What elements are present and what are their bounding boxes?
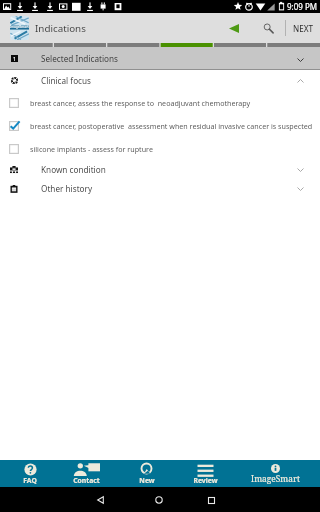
button[interactable]: New	[113, 460, 180, 487]
staticText: New	[139, 476, 155, 485]
button[interactable]: breast cancer, assess the response to ne…	[0, 91, 320, 114]
button[interactable]: Back	[92, 492, 108, 508]
button[interactable]: NEXT	[286, 13, 320, 43]
button[interactable]: Other history	[0, 179, 320, 198]
staticText: silicone implants - assess for rupture	[30, 144, 153, 154]
staticText: ImageSmart	[10, 25, 29, 29]
staticText: FAQ	[23, 476, 37, 485]
staticText: NEXT	[293, 23, 314, 34]
staticText: 1	[13, 55, 17, 62]
button[interactable]: breast cancer, postoperative assessment …	[0, 114, 320, 137]
button[interactable]: Search	[253, 13, 283, 43]
staticText: Known condition	[41, 164, 106, 175]
staticText: breast cancer, postoperative assessment …	[30, 121, 313, 131]
staticText: Selected Indications	[41, 53, 119, 64]
button[interactable]: Known condition	[0, 160, 320, 179]
button[interactable]: Review	[180, 460, 230, 487]
button[interactable]: ImageSmart	[230, 460, 320, 487]
button[interactable]: Clinical focus	[0, 70, 320, 91]
staticText: 9:09 PM	[287, 1, 318, 12]
staticText: breast cancer, assess the response to ne…	[30, 98, 251, 108]
button[interactable]: FAQ	[0, 460, 60, 487]
button[interactable]: silicone implants - assess for rupture	[0, 137, 320, 160]
button[interactable]: 1	[0, 47, 320, 70]
staticText: Clinical focus	[41, 75, 92, 86]
button[interactable]: App icon	[10, 16, 29, 40]
button[interactable]: Recents	[203, 492, 219, 508]
staticText: ImageSmart	[251, 473, 300, 484]
button[interactable]: Contact	[60, 460, 113, 487]
staticText: Other history	[41, 183, 93, 194]
staticText: Indications	[35, 22, 86, 35]
staticText: Contact	[73, 476, 100, 485]
staticText: Review	[193, 476, 218, 485]
button[interactable]: Previous	[219, 13, 249, 43]
button[interactable]: Home	[151, 492, 167, 508]
